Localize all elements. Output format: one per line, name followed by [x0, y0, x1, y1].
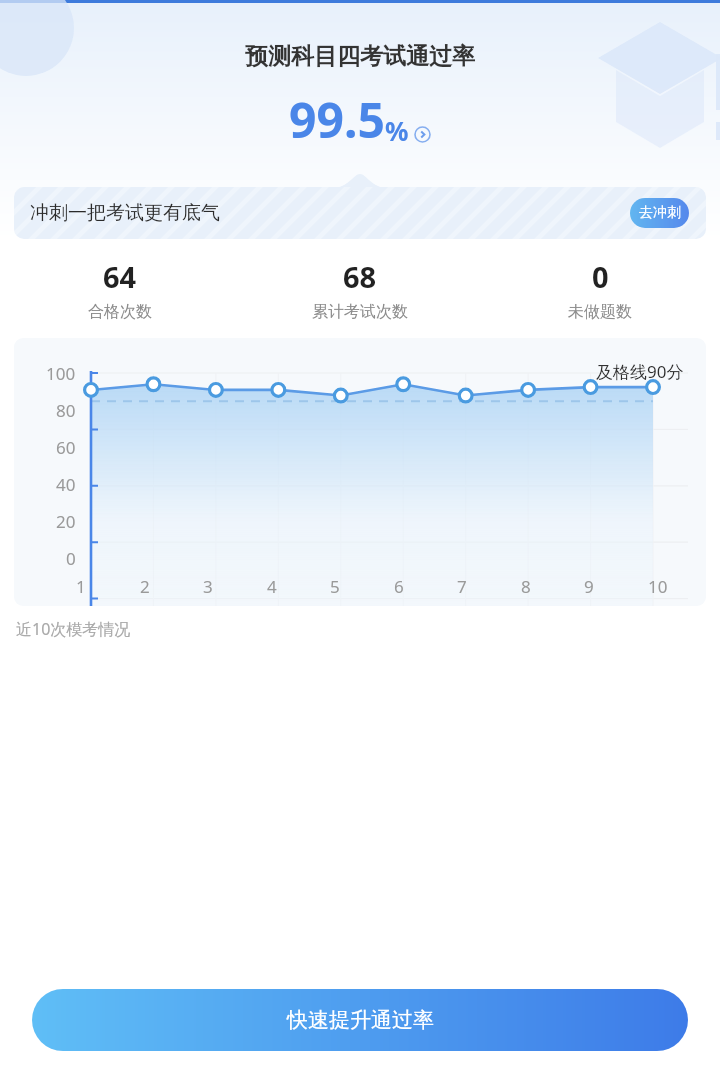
staticText: 0	[592, 257, 609, 296]
staticText: 冲刺一把考试更有底气	[30, 201, 220, 225]
staticText: 去冲刺	[639, 204, 681, 222]
staticText: 及格线90分	[596, 360, 684, 383]
staticText: 60	[56, 436, 76, 459]
staticText: 7	[457, 575, 467, 598]
button[interactable]: 64	[0, 257, 240, 322]
button[interactable]: 0	[480, 257, 720, 322]
staticText: 10	[648, 575, 668, 598]
button[interactable]: 冲刺一把考试更有底气	[14, 187, 706, 239]
staticText: 未做题数	[568, 302, 632, 322]
staticText: 预测科目四考试通过率	[0, 42, 720, 71]
button[interactable]: 99.5	[0, 87, 720, 152]
staticText: 快速提升通过率	[287, 1007, 434, 1033]
button[interactable]: 去冲刺	[630, 198, 689, 228]
staticText: 80	[56, 399, 76, 422]
staticText: 3	[203, 575, 213, 598]
staticText: 9	[584, 575, 594, 598]
other: 查看详情	[414, 126, 431, 143]
button[interactable]: 100	[14, 338, 706, 606]
button[interactable]: 68	[240, 257, 480, 322]
staticText: 8	[521, 575, 531, 598]
staticText: 68	[343, 257, 377, 296]
staticText: 2	[140, 575, 150, 598]
staticText: 40	[56, 473, 76, 496]
staticText: 100	[46, 362, 76, 385]
staticText: 累计考试次数	[312, 302, 408, 322]
staticText: 20	[56, 510, 76, 533]
staticText: 4	[267, 575, 277, 598]
staticText: %	[385, 113, 409, 148]
staticText: 5	[330, 575, 340, 598]
staticText: 合格次数	[88, 302, 152, 322]
staticText: 1	[76, 575, 86, 598]
staticText: 64	[103, 257, 137, 296]
staticText: 6	[394, 575, 404, 598]
staticText: 0	[66, 547, 76, 570]
staticText: 近10次模考情况	[16, 618, 131, 640]
button[interactable]: 快速提升通过率	[32, 989, 688, 1051]
staticText: 99.5	[289, 87, 385, 152]
